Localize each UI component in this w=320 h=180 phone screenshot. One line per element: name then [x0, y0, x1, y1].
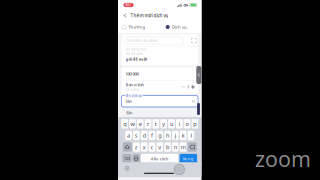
button[interactable]: dấu cách [141, 154, 178, 163]
button[interactable]: Shift [123, 142, 132, 152]
staticText: m [181, 143, 186, 151]
staticText: x [143, 143, 146, 151]
staticText: i [179, 120, 180, 127]
staticText: zoom [255, 145, 311, 173]
button[interactable]: Tìm kiếm sản phẩm [123, 37, 183, 44]
button[interactable]: b [164, 142, 171, 152]
button[interactable]: Delete [188, 142, 197, 152]
button[interactable]: Sân [121, 95, 198, 107]
staticText: q [123, 120, 126, 127]
staticText: w [130, 120, 134, 127]
button[interactable]: Dịch vụ [166, 24, 187, 30]
button[interactable]: v [156, 142, 163, 152]
button[interactable]: d [141, 131, 147, 140]
staticText: Thường [129, 24, 146, 30]
staticText: a [127, 132, 130, 139]
button[interactable]: n [172, 142, 179, 152]
staticText: v [158, 143, 161, 151]
staticText: b [166, 143, 169, 151]
button[interactable]: Thường [122, 24, 146, 30]
button[interactable]: z [133, 142, 140, 152]
button[interactable]: m [180, 142, 186, 152]
staticText: f [151, 132, 153, 139]
staticText: dấu cách [151, 156, 169, 161]
button[interactable]: a [125, 131, 132, 140]
button[interactable]: AssistiveTouch [174, 164, 184, 175]
staticText: Sân [126, 110, 133, 115]
staticText: l [190, 132, 191, 139]
staticText: 100 000 [125, 71, 138, 77]
button[interactable]: 123 [122, 154, 131, 163]
staticText: r [147, 120, 149, 127]
button[interactable]: q [121, 119, 128, 128]
button[interactable]: h [164, 131, 171, 140]
button[interactable]: Back [122, 11, 128, 20]
staticText: Giá đề xuất [125, 52, 142, 56]
button[interactable]: w [129, 119, 136, 128]
button[interactable]: Xong [179, 154, 197, 163]
button[interactable]: Decrease [181, 85, 185, 89]
staticText: Sân [125, 98, 132, 104]
staticText: u [170, 120, 173, 127]
button[interactable]: Open panel [196, 66, 201, 84]
button[interactable]: y [160, 119, 167, 128]
button[interactable]: t [152, 119, 159, 128]
staticText: giá đề xuất [125, 56, 147, 62]
button[interactable]: Dictation [125, 166, 129, 170]
button[interactable]: k [180, 131, 186, 140]
staticText: Đơn vị tính [125, 82, 143, 87]
button[interactable]: e [137, 119, 144, 128]
staticText: n [174, 143, 177, 151]
staticText: c [150, 143, 153, 151]
staticText: Tên hàng hóa [125, 47, 146, 51]
button[interactable]: u [168, 119, 175, 128]
staticText: g [158, 132, 161, 139]
staticText: 1 [187, 84, 189, 89]
staticText: z [135, 143, 138, 151]
button[interactable]: j [172, 131, 179, 140]
button[interactable]: s [133, 131, 140, 140]
button[interactable]: p [191, 119, 198, 128]
staticText: Tìm kiếm sản phẩm [126, 38, 158, 43]
staticText: Số lượng [125, 88, 139, 91]
button[interactable]: Scan barcode [191, 38, 197, 43]
button[interactable]: Emoji [133, 154, 140, 163]
button[interactable]: c [149, 142, 155, 152]
staticText: REC [125, 3, 131, 7]
button[interactable]: Increase [191, 85, 195, 89]
staticText: e [139, 120, 142, 127]
staticText: y [162, 120, 165, 127]
staticText: h [166, 132, 169, 139]
staticText: 123 [124, 156, 130, 161]
staticText: p [193, 120, 196, 127]
button[interactable]: o [184, 119, 190, 128]
staticText: Tên dịch vụ [126, 94, 142, 98]
staticText: t [155, 120, 157, 127]
staticText: k [182, 132, 185, 139]
button[interactable]: x [141, 142, 147, 152]
staticText: s [135, 132, 138, 139]
staticText: o [185, 120, 188, 127]
button[interactable]: g [156, 131, 163, 140]
staticText: d [143, 132, 146, 139]
button[interactable]: i [176, 119, 183, 128]
staticText: Xong [183, 156, 194, 161]
staticText: Thêm mới dịch vụ [130, 12, 168, 18]
button[interactable]: l [188, 131, 194, 140]
staticText: j [175, 132, 176, 139]
staticText: Dịch vụ [172, 24, 187, 30]
button[interactable]: r [145, 119, 151, 128]
button[interactable]: f [149, 131, 155, 140]
